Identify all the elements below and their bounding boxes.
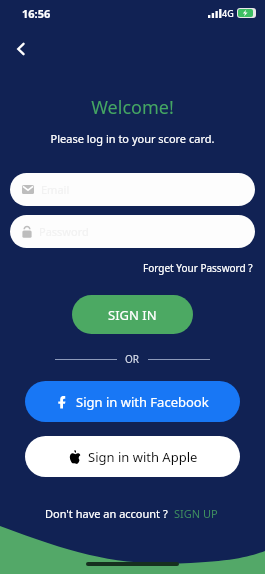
staticText: Welcome! bbox=[0, 95, 265, 120]
staticText: Don't have an account ? bbox=[45, 506, 168, 521]
staticText: OR bbox=[125, 352, 140, 366]
button[interactable]: Email bbox=[10, 173, 255, 206]
button[interactable]: SIGN IN bbox=[72, 295, 193, 334]
staticText: Email bbox=[41, 182, 70, 197]
staticText: Sign in with Apple bbox=[88, 448, 198, 466]
staticText: SIGN IN bbox=[108, 306, 157, 324]
staticText: Password bbox=[39, 224, 89, 239]
staticText: Sign in with Facebook bbox=[76, 393, 209, 411]
staticText: 4G bbox=[222, 7, 234, 19]
staticText: SIGN UP bbox=[174, 506, 218, 521]
button[interactable]: SIGN UP bbox=[168, 504, 220, 523]
staticText: Please log in to your score card. bbox=[0, 131, 265, 146]
button[interactable]: Password bbox=[10, 215, 255, 248]
button[interactable]: Back bbox=[4, 32, 38, 66]
button[interactable]: Sign in with Apple bbox=[25, 436, 240, 477]
button[interactable]: Forget Your Password ? bbox=[143, 259, 265, 277]
staticText: Forget Your Password ? bbox=[143, 261, 253, 275]
button[interactable]: Sign in with Facebook bbox=[25, 381, 240, 422]
staticText: 16:56 bbox=[22, 6, 51, 21]
